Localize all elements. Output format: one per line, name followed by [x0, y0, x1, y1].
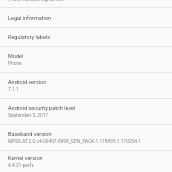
staticText: Baseband version	[8, 131, 52, 137]
button[interactable]: Model	[0, 47, 172, 72]
button[interactable]: Phone number, signal, etc.	[0, 0, 172, 7]
staticText: MPSS.AT.2.0.c4-00497-8998_GEN_PACK-1.118…	[8, 139, 142, 145]
button[interactable]: Baseband version	[0, 125, 172, 150]
staticText: Kernel version	[8, 155, 43, 161]
button[interactable]: Regulatory labels	[0, 28, 172, 46]
staticText: September 5, 2017	[8, 113, 49, 119]
button[interactable]: Legal information	[0, 8, 172, 27]
staticText: Legal information	[8, 15, 52, 21]
staticText: Phone number, signal, etc.	[8, 0, 64, 3]
staticText: 4.4.21-perf+	[8, 163, 34, 169]
staticText: 7.1.1	[8, 87, 19, 93]
staticText: Phone	[8, 61, 22, 67]
staticText: Android security patch level	[8, 105, 76, 111]
staticText: Regulatory labels	[8, 34, 51, 40]
staticText: Android version	[8, 79, 47, 85]
button[interactable]: Android security patch level	[0, 99, 172, 124]
button[interactable]: Kernel version	[0, 151, 172, 172]
button[interactable]: Android version	[0, 73, 172, 98]
staticText: Model	[8, 53, 24, 59]
